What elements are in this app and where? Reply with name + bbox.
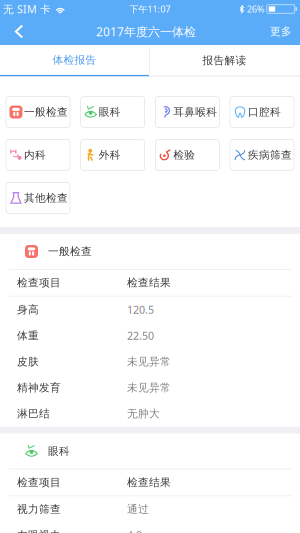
button[interactable]: 耳鼻喉科 [155, 96, 219, 127]
button[interactable]: 口腔科 [230, 96, 294, 127]
button[interactable]: 体检报告 [0, 45, 149, 76]
staticText: 眼科 [48, 444, 70, 458]
staticText: 4.8 [127, 528, 142, 533]
button[interactable]: 一般检查 [6, 96, 70, 127]
staticText: 检查项目 [17, 276, 61, 289]
staticText: 无肿大 [127, 407, 160, 420]
staticText: 报告解读 [202, 54, 246, 67]
button[interactable]: 内科 [6, 139, 70, 170]
button[interactable]: 眼科 [81, 96, 145, 127]
staticText: 淋巴结 [17, 407, 50, 420]
staticText: 眼科 [99, 105, 121, 118]
staticText: 视力筛查 [17, 503, 61, 516]
staticText: 体检报告 [52, 53, 96, 66]
staticText: 120.5 [127, 302, 154, 317]
staticText: 下午11:07 [129, 3, 170, 15]
button[interactable]: 检验 [155, 139, 219, 170]
staticText: 左眼视力 [17, 529, 61, 533]
staticText: 2017年度六一体检 [96, 23, 196, 39]
button[interactable]: 更多 [252, 18, 300, 45]
staticText: 内科 [24, 148, 46, 161]
button[interactable]: 外科 [81, 139, 145, 170]
staticText: 22.50 [127, 328, 154, 343]
staticText: 更多 [270, 25, 292, 38]
staticText: 其他检查 [24, 191, 68, 204]
staticText: 检查结果 [127, 476, 171, 489]
button[interactable]: 返回 [0, 18, 40, 45]
staticText: 疾病筛查 [248, 148, 292, 161]
staticText: 26% [247, 3, 265, 15]
staticText: 检查结果 [127, 276, 171, 289]
staticText: 体重 [17, 329, 39, 342]
button[interactable]: 疾病筛查 [230, 139, 294, 170]
staticText: 耳鼻喉科 [173, 105, 217, 118]
staticText: 未见异常 [127, 355, 171, 368]
staticText: 身高 [17, 303, 39, 316]
staticText: 皮肤 [17, 355, 39, 368]
staticText: 通过 [127, 503, 149, 516]
staticText: 无 SIM 卡 [3, 2, 51, 16]
staticText: 一般检查 [48, 245, 92, 258]
staticText: 精神发育 [17, 381, 61, 394]
staticText: 一般检查 [24, 105, 68, 118]
staticText: 口腔科 [248, 105, 281, 118]
button[interactable]: 其他检查 [6, 182, 70, 213]
staticText: 检验 [173, 148, 195, 161]
staticText: 检查项目 [17, 476, 61, 489]
button[interactable]: 报告解读 [149, 45, 300, 76]
staticText: 外科 [99, 148, 121, 161]
staticText: 未见异常 [127, 381, 171, 394]
